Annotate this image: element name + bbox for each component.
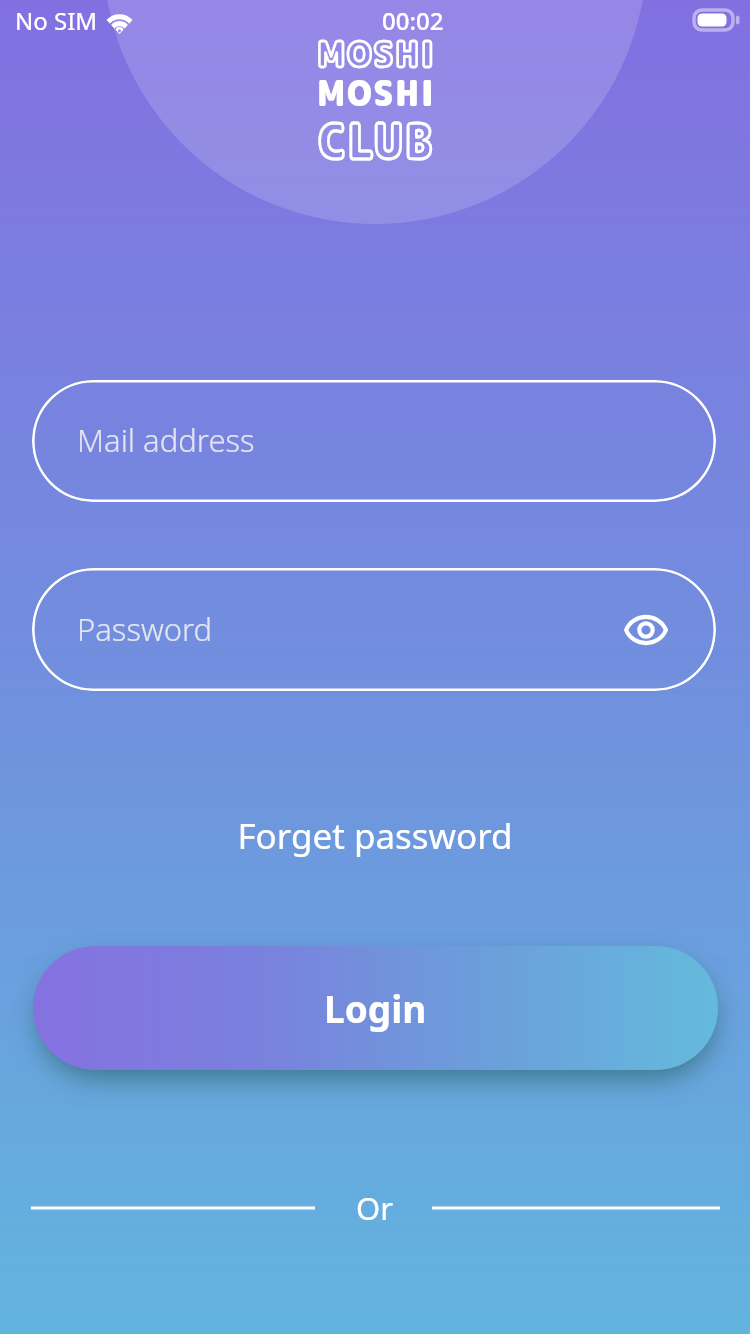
staticText: MOSHI	[317, 28, 436, 78]
staticText: Mail address	[77, 419, 255, 461]
staticText: Forget password	[237, 812, 513, 860]
staticText: No SIM	[15, 4, 98, 37]
staticText: MOSHI	[317, 67, 436, 117]
staticText: 00:02	[382, 4, 444, 37]
staticText: Password	[77, 608, 213, 650]
staticText: Or	[356, 1187, 394, 1229]
staticText: CLUB	[318, 106, 435, 174]
button[interactable]: Forget password	[0, 800, 750, 872]
button[interactable]: Mail address	[32, 380, 716, 502]
button[interactable]: Password	[32, 568, 716, 691]
button[interactable]: Show password	[616, 600, 676, 660]
staticText: Login	[324, 983, 427, 1033]
button[interactable]: Login	[33, 946, 718, 1070]
